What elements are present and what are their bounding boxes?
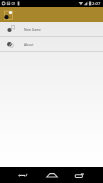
button[interactable]: Recent apps xyxy=(69,167,103,183)
button[interactable]: New Game xyxy=(0,22,103,36)
button[interactable]: Home xyxy=(35,167,69,183)
button[interactable]: About xyxy=(0,37,103,51)
button[interactable]: Minesweeper xyxy=(2,9,14,21)
staticText: About xyxy=(24,42,34,46)
staticText: 2:07 xyxy=(92,1,101,7)
staticText: New Game xyxy=(24,27,41,31)
button[interactable]: Back xyxy=(0,167,35,183)
